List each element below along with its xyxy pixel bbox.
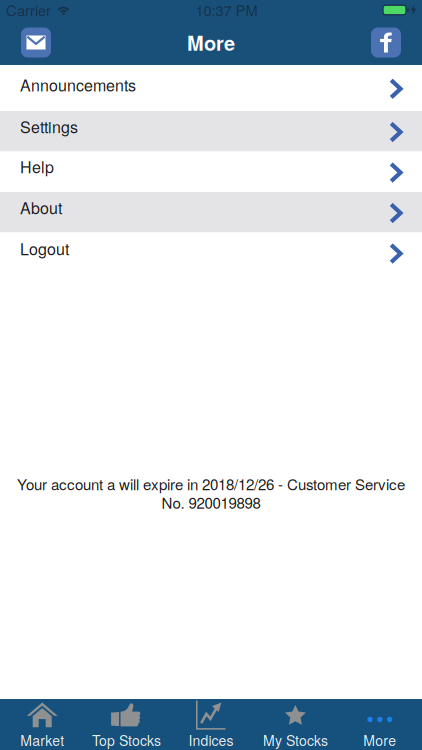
staticText: Carrier: [6, 0, 51, 20]
staticText: Logout: [20, 237, 69, 260]
staticText: Indices: [188, 730, 233, 750]
staticText: Announcements: [20, 73, 136, 96]
button[interactable]: My Stocks: [253, 699, 338, 750]
staticText: Settings: [20, 115, 78, 138]
staticText: 10:37 PM: [195, 0, 257, 20]
button[interactable]: Top Stocks: [84, 699, 169, 750]
button[interactable]: Logout: [0, 232, 422, 273]
button[interactable]: Help: [0, 151, 422, 192]
button[interactable]: Facebook: [371, 27, 401, 57]
button[interactable]: Settings: [0, 111, 422, 151]
staticText: Market: [20, 730, 64, 750]
button[interactable]: Indices: [169, 699, 253, 750]
button[interactable]: Announcements: [0, 65, 422, 111]
staticText: About: [20, 196, 62, 219]
button[interactable]: Mail: [21, 27, 51, 57]
staticText: More: [187, 28, 235, 57]
button[interactable]: About: [0, 192, 422, 232]
staticText: No. 920019898: [161, 492, 260, 513]
staticText: Help: [20, 155, 54, 178]
button[interactable]: More: [338, 699, 422, 750]
staticText: More: [363, 730, 396, 750]
button[interactable]: Market: [0, 699, 84, 750]
staticText: Your account a will expire in 2018/12/26…: [17, 473, 405, 495]
staticText: Top Stocks: [92, 730, 161, 750]
staticText: My Stocks: [263, 730, 328, 750]
